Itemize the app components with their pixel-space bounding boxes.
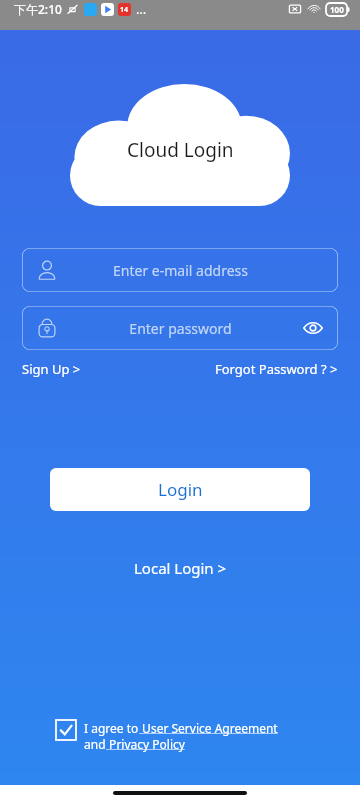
staticText: 下午2:10 [14, 1, 62, 17]
staticText: Sign Up > [22, 360, 81, 378]
staticText: 100 [330, 4, 344, 15]
button[interactable]: I agree checkbox [56, 720, 76, 740]
button[interactable]: Show password [302, 317, 324, 339]
button[interactable]: Login [50, 468, 310, 511]
staticText: Cloud Login [127, 137, 234, 163]
button[interactable]: Enter password [22, 306, 338, 350]
staticText: Forgot Password ? > [215, 360, 338, 378]
staticText: Local Login > [134, 558, 227, 578]
button[interactable]: Enter e-mail address [22, 248, 338, 292]
staticText: … [136, 0, 147, 18]
staticText: Enter password [129, 319, 232, 338]
staticText: Login [158, 478, 203, 501]
staticText: 14 [120, 5, 129, 15]
button[interactable]: Forgot Password ? > [215, 360, 338, 378]
staticText: I agree to [84, 720, 139, 736]
button[interactable]: Local Login > [134, 558, 227, 578]
button[interactable]: Privacy Policy [106, 736, 188, 752]
button[interactable]: User Service Agreement [139, 720, 281, 736]
staticText: and [84, 736, 106, 752]
button[interactable]: Sign Up > [22, 360, 81, 378]
staticText: Privacy Policy [106, 736, 188, 752]
staticText: Enter e-mail address [113, 261, 248, 280]
staticText: User Service Agreement [139, 720, 281, 736]
